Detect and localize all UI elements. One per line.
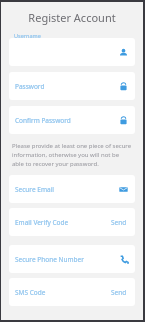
staticText: Secure Phone Number	[15, 255, 84, 264]
staticText: Username	[14, 32, 41, 39]
staticText: Confirm Password	[15, 116, 71, 125]
staticText: Register Account	[28, 10, 116, 25]
button[interactable]: Password	[118, 81, 129, 92]
staticText: Send	[111, 288, 127, 297]
button[interactable]: Secure Email	[9, 175, 135, 203]
button[interactable]: Secure Phone Number	[9, 245, 135, 273]
staticText: Email Verify Code	[15, 218, 69, 227]
button[interactable]: Account	[118, 47, 129, 58]
button[interactable]: Confirm Password	[9, 106, 135, 134]
button[interactable]: Phone	[118, 254, 129, 265]
staticText: Please provide at least one piece of sec…	[12, 142, 132, 168]
button[interactable]: SMS Code	[9, 278, 135, 306]
button[interactable]: Password	[9, 72, 135, 100]
staticText: Send	[111, 218, 127, 227]
button[interactable]: Send	[109, 216, 129, 229]
staticText: Secure Email	[15, 185, 54, 194]
staticText: SMS Code	[15, 288, 46, 297]
button[interactable]: Send	[109, 286, 129, 299]
button[interactable]: Account	[9, 38, 135, 66]
button[interactable]: Email Verify Code	[9, 208, 135, 236]
button[interactable]: Email	[118, 184, 129, 195]
staticText: Password	[15, 82, 45, 91]
button[interactable]: Password	[118, 115, 129, 126]
